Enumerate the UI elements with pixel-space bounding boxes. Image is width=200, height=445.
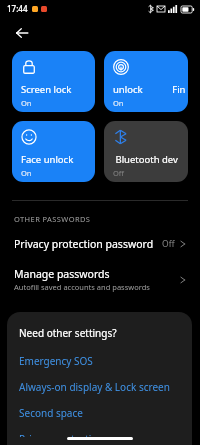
button[interactable]: Privacy protection password — [0, 235, 200, 253]
staticText: Always-on display & Lock screen — [19, 380, 170, 394]
staticText: Off — [113, 168, 125, 178]
button[interactable]: Back — [11, 22, 33, 44]
staticText: Autofill saved accounts and passwords — [14, 282, 150, 292]
staticText: Privacy protection password — [14, 237, 154, 251]
staticText: OTHER PASSWORDS — [14, 214, 91, 224]
staticText: unlock Fing — [113, 83, 186, 96]
staticText: Privacy protection — [19, 432, 104, 437]
staticText: 17:44 — [7, 3, 28, 14]
staticText: On — [113, 98, 124, 108]
button[interactable]: unlock Fing — [104, 51, 188, 112]
staticText: Need other settings? — [19, 326, 117, 340]
staticText: On — [21, 98, 32, 108]
button[interactable]: Screen lock — [12, 51, 95, 112]
button[interactable]: Second space — [19, 406, 182, 420]
button[interactable]: Bluetooth dev — [104, 121, 188, 182]
button[interactable]: Manage passwords — [0, 265, 200, 294]
staticText: Second space — [19, 406, 83, 420]
button[interactable]: Privacy protection — [19, 432, 182, 437]
staticText: Bluetooth dev — [113, 153, 178, 166]
staticText: Screen lock — [21, 83, 72, 96]
staticText: Emergency SOS — [19, 354, 93, 368]
button[interactable]: Always-on display & Lock screen — [19, 380, 182, 394]
staticText: On — [21, 168, 32, 178]
button[interactable]: Face unlock — [12, 121, 95, 182]
staticText: Off — [162, 238, 175, 250]
staticText: Face unlock — [21, 153, 74, 166]
button[interactable]: Emergency SOS — [19, 354, 182, 368]
staticText: Manage passwords — [14, 267, 110, 281]
